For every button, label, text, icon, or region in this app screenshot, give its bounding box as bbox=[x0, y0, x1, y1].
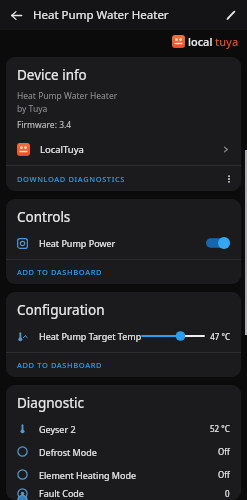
staticText: LocalTuya bbox=[40, 143, 84, 156]
staticText: Fault Code bbox=[39, 487, 84, 499]
button[interactable]: LocalTuya bbox=[6, 136, 241, 162]
staticText: Heat Pump Water Heater bbox=[17, 90, 118, 102]
staticText: Controls bbox=[17, 208, 71, 226]
staticText: Heat Pump Power bbox=[39, 237, 116, 249]
staticText: Off bbox=[218, 446, 230, 457]
button[interactable]: Edit bbox=[218, 2, 244, 28]
staticText: Off bbox=[218, 469, 230, 480]
button[interactable]: Element Heating Mode bbox=[6, 463, 241, 486]
button[interactable]: Back bbox=[3, 2, 29, 28]
button[interactable]: ADD TO DASHBOARD bbox=[6, 260, 241, 284]
staticText: 0 bbox=[225, 488, 230, 499]
button[interactable]: DOWNLOAD DIAGNOSTICS bbox=[6, 166, 216, 191]
staticText: Heat Pump Target Temp bbox=[39, 330, 142, 342]
button[interactable]: Fault Code bbox=[6, 486, 241, 500]
staticText: tuya bbox=[215, 34, 239, 49]
staticText: local bbox=[188, 34, 213, 49]
staticText: Heat Pump Water Heater bbox=[33, 7, 169, 23]
staticText: DOWNLOAD DIAGNOSTICS bbox=[17, 174, 126, 184]
staticText: 52 °C bbox=[210, 423, 230, 434]
staticText: Element Heating Mode bbox=[39, 469, 137, 481]
staticText: Device info bbox=[17, 66, 87, 84]
button[interactable]: Heat Pump Power toggle bbox=[206, 237, 230, 249]
staticText: ADD TO DASHBOARD bbox=[17, 360, 103, 370]
staticText: ADD TO DASHBOARD bbox=[17, 267, 103, 277]
staticText: Diagnostic bbox=[17, 394, 85, 412]
button[interactable]: Heat Pump Power bbox=[6, 230, 241, 256]
button[interactable]: Defrost Mode bbox=[6, 440, 241, 463]
button[interactable]: Geyser 2 bbox=[6, 417, 241, 440]
staticText: Geyser 2 bbox=[39, 423, 76, 435]
staticText: Defrost Mode bbox=[39, 446, 97, 458]
button[interactable]: More options bbox=[216, 166, 241, 191]
staticText: by Tuya bbox=[17, 103, 48, 115]
staticText: Firmware: 3.4 bbox=[17, 119, 72, 131]
button[interactable]: ADD TO DASHBOARD bbox=[6, 353, 241, 377]
staticText: Configuration bbox=[17, 301, 105, 319]
button[interactable]: Target temperature slider bbox=[142, 328, 204, 344]
staticText: 47 °C bbox=[209, 331, 230, 342]
